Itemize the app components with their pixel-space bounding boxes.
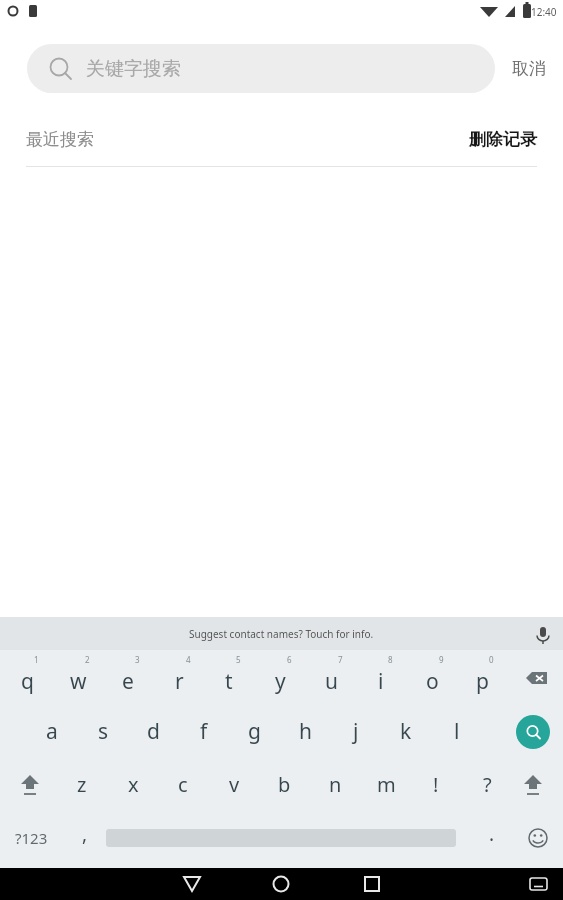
- staticText: 3: [135, 654, 140, 665]
- staticText: 关键字搜索: [86, 57, 181, 81]
- staticText: i: [378, 667, 384, 696]
- button[interactable]: Search: [503, 705, 563, 758]
- staticText: 2: [85, 654, 90, 665]
- button[interactable]: a: [27, 705, 77, 758]
- staticText: u: [325, 667, 338, 696]
- button[interactable]: Back: [160, 868, 224, 900]
- staticText: p: [476, 667, 489, 696]
- button[interactable]: 7: [306, 650, 356, 705]
- staticText: Suggest contact names? Touch for info.: [189, 627, 374, 641]
- staticText: t: [225, 667, 233, 696]
- button[interactable]: x: [108, 758, 158, 811]
- staticText: o: [426, 667, 439, 696]
- staticText: c: [178, 771, 188, 798]
- button[interactable]: ,: [62, 811, 108, 864]
- button[interactable]: .: [469, 811, 515, 864]
- staticText: 最近搜索: [26, 129, 94, 150]
- button[interactable]: Suggest contact names? Touch for info.: [0, 617, 563, 650]
- staticText: b: [278, 771, 291, 798]
- staticText: 1: [34, 654, 39, 665]
- staticText: q: [21, 667, 34, 696]
- button[interactable]: g: [229, 705, 279, 758]
- button[interactable]: Shift: [507, 758, 559, 811]
- staticText: .: [489, 821, 495, 847]
- button[interactable]: Switch keyboard: [519, 868, 563, 900]
- button[interactable]: d: [128, 705, 178, 758]
- staticText: y: [275, 667, 286, 696]
- button[interactable]: m: [361, 758, 411, 811]
- button[interactable]: 取消: [495, 24, 563, 112]
- staticText: 9: [439, 654, 444, 665]
- staticText: 7: [338, 654, 343, 665]
- staticText: h: [299, 717, 312, 746]
- staticText: 6: [287, 654, 292, 665]
- button[interactable]: v: [209, 758, 259, 811]
- staticText: !: [433, 771, 439, 798]
- button[interactable]: Emoji: [513, 811, 563, 864]
- staticText: x: [128, 771, 139, 798]
- button[interactable]: Voice input: [523, 617, 563, 650]
- staticText: g: [248, 717, 261, 746]
- staticText: r: [175, 667, 184, 696]
- staticText: z: [77, 771, 87, 798]
- staticText: w: [70, 667, 87, 696]
- button[interactable]: !: [411, 758, 461, 811]
- staticText: a: [46, 717, 58, 746]
- button[interactable]: z: [57, 758, 107, 811]
- button[interactable]: 4: [154, 650, 204, 705]
- button[interactable]: k: [381, 705, 431, 758]
- staticText: ?123: [15, 828, 48, 848]
- button[interactable]: j: [331, 705, 381, 758]
- staticText: j: [353, 717, 359, 746]
- staticText: e: [122, 667, 134, 696]
- button[interactable]: 6: [255, 650, 305, 705]
- button[interactable]: 2: [53, 650, 103, 705]
- button[interactable]: 关键字搜索: [27, 44, 495, 93]
- staticText: m: [377, 771, 396, 798]
- button[interactable]: 8: [356, 650, 406, 705]
- button[interactable]: 3: [103, 650, 153, 705]
- button[interactable]: ?: [462, 758, 512, 811]
- button[interactable]: 0: [457, 650, 507, 705]
- button[interactable]: ?123: [0, 811, 62, 864]
- button[interactable]: n: [310, 758, 360, 811]
- button[interactable]: c: [158, 758, 208, 811]
- staticText: 4: [186, 654, 191, 665]
- button[interactable]: Home: [249, 868, 313, 900]
- staticText: d: [147, 717, 160, 746]
- staticText: f: [200, 717, 208, 746]
- staticText: v: [229, 771, 240, 798]
- staticText: 0: [489, 654, 494, 665]
- staticText: k: [400, 717, 412, 746]
- button[interactable]: Backspace: [511, 650, 563, 705]
- button[interactable]: s: [78, 705, 128, 758]
- button[interactable]: 1: [2, 650, 52, 705]
- staticText: l: [454, 717, 460, 746]
- staticText: 取消: [512, 58, 546, 79]
- staticText: 12:40: [531, 5, 557, 19]
- button[interactable]: b: [259, 758, 309, 811]
- button[interactable]: h: [280, 705, 330, 758]
- staticText: 5: [236, 654, 241, 665]
- button[interactable]: 9: [407, 650, 457, 705]
- staticText: ?: [483, 771, 492, 798]
- button[interactable]: Shift: [4, 758, 56, 811]
- button[interactable]: Recents: [340, 868, 404, 900]
- button[interactable]: 5: [204, 650, 254, 705]
- button[interactable]: 删除记录: [469, 129, 537, 150]
- staticText: ,: [82, 821, 88, 847]
- staticText: 删除记录: [469, 129, 537, 150]
- staticText: s: [98, 717, 109, 746]
- staticText: n: [329, 771, 342, 798]
- button[interactable]: l: [432, 705, 482, 758]
- staticText: 8: [388, 654, 393, 665]
- button[interactable]: f: [179, 705, 229, 758]
